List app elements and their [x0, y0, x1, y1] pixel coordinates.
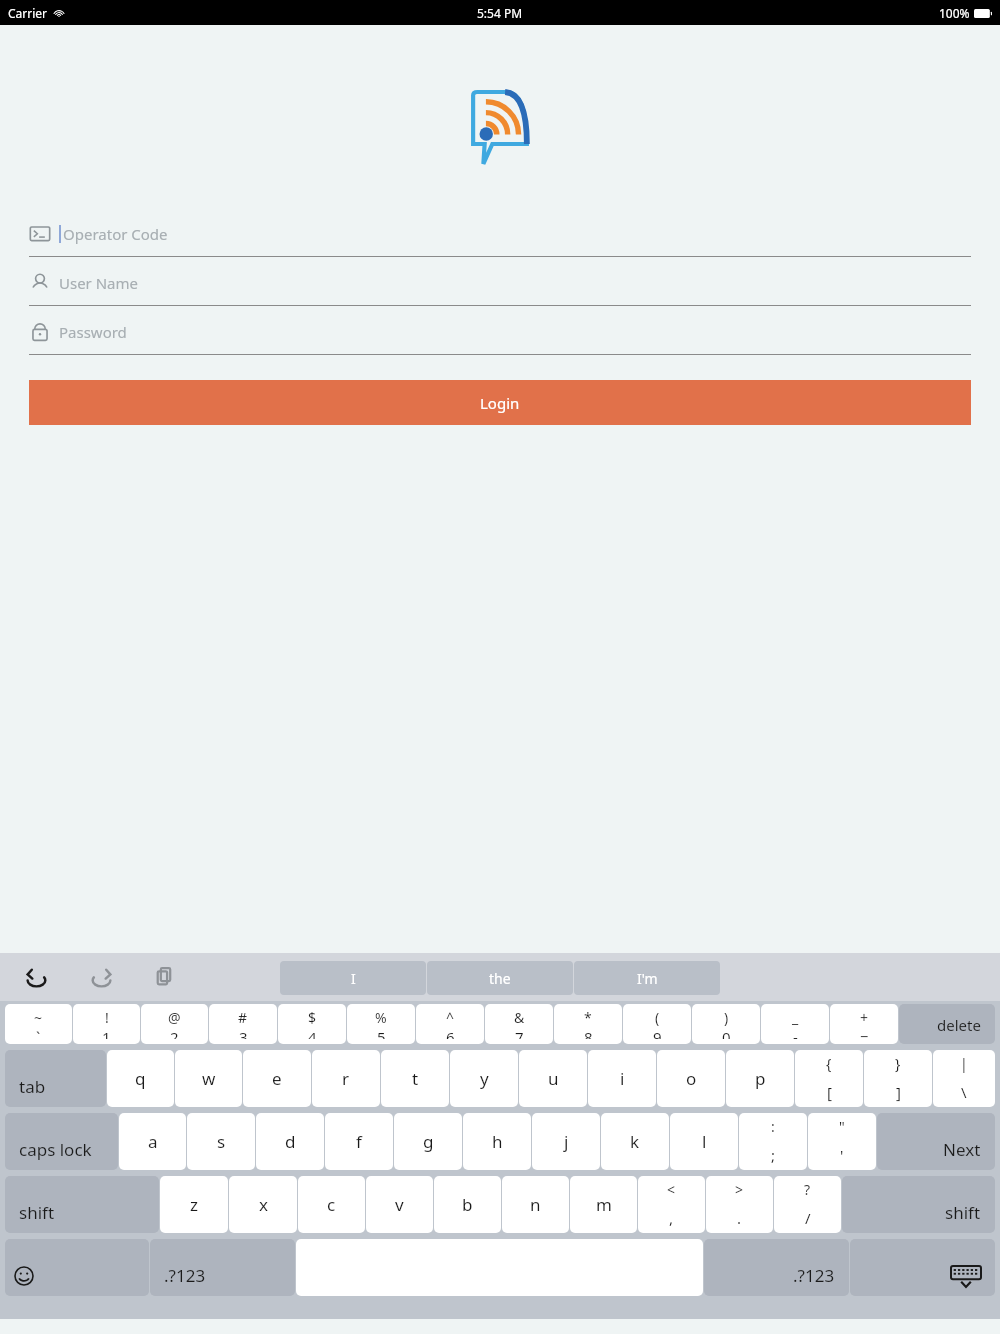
staticText: I	[351, 969, 356, 988]
button[interactable]: }	[864, 1050, 932, 1107]
button[interactable]: Operator Code	[29, 212, 971, 257]
button[interactable]: >	[706, 1176, 773, 1233]
button[interactable]: o	[657, 1050, 725, 1107]
button[interactable]: _	[761, 1004, 829, 1044]
button[interactable]: b	[434, 1176, 501, 1233]
button[interactable]: Redo	[84, 960, 118, 994]
button[interactable]: d	[256, 1113, 324, 1170]
button[interactable]: Undo	[20, 960, 54, 994]
button[interactable]: ~	[5, 1004, 72, 1044]
button[interactable]: Emoji	[5, 1239, 149, 1296]
button[interactable]: +	[830, 1004, 898, 1044]
button[interactable]: m	[570, 1176, 637, 1233]
staticText: shift	[19, 1201, 55, 1224]
button[interactable]: :	[739, 1113, 807, 1170]
button[interactable]: i	[588, 1050, 656, 1107]
button[interactable]: |	[933, 1050, 995, 1107]
staticText: g	[423, 1130, 434, 1153]
button[interactable]: &	[485, 1004, 553, 1044]
staticText: {	[826, 1054, 832, 1073]
button[interactable]: I	[280, 961, 426, 995]
button[interactable]: t	[381, 1050, 449, 1107]
button[interactable]: Next	[877, 1113, 995, 1170]
staticText: Login	[480, 393, 520, 413]
button[interactable]: %	[347, 1004, 415, 1044]
button[interactable]: *	[554, 1004, 622, 1044]
staticText: 1	[102, 1027, 111, 1039]
staticText: [	[827, 1082, 832, 1102]
button[interactable]: )	[692, 1004, 760, 1044]
button[interactable]: h	[463, 1113, 531, 1170]
staticText: 4	[308, 1027, 317, 1039]
button[interactable]: k	[601, 1113, 669, 1170]
button[interactable]: g	[394, 1113, 462, 1170]
button[interactable]: x	[229, 1176, 297, 1233]
staticText: %	[375, 1008, 387, 1027]
button[interactable]: c	[298, 1176, 365, 1233]
staticText: s	[217, 1130, 226, 1153]
button[interactable]: #	[209, 1004, 277, 1044]
button[interactable]: @	[141, 1004, 208, 1044]
button[interactable]: Password	[29, 310, 971, 355]
button[interactable]: Paste	[148, 960, 182, 994]
button[interactable]: delete	[899, 1004, 995, 1044]
button[interactable]: r	[312, 1050, 380, 1107]
button[interactable]: <	[638, 1176, 705, 1233]
button[interactable]: j	[532, 1113, 600, 1170]
button[interactable]: f	[325, 1113, 393, 1170]
staticText: )	[724, 1008, 729, 1027]
button[interactable]: v	[366, 1176, 433, 1233]
button[interactable]: !	[73, 1004, 140, 1044]
staticText: 5:54 PM	[477, 5, 523, 21]
button[interactable]: {	[795, 1050, 863, 1107]
staticText: v	[395, 1193, 404, 1216]
button[interactable]: shift	[842, 1176, 995, 1233]
staticText: e	[272, 1067, 282, 1090]
button[interactable]: z	[160, 1176, 228, 1233]
button[interactable]: tab	[5, 1050, 106, 1107]
button[interactable]: shift	[5, 1176, 159, 1233]
button[interactable]: "	[808, 1113, 876, 1170]
staticText: x	[259, 1193, 268, 1216]
button[interactable]: caps lock	[5, 1113, 118, 1170]
button[interactable]: Hide keyboard	[850, 1239, 995, 1296]
staticText: (	[655, 1008, 660, 1027]
staticText: *	[584, 1008, 592, 1027]
button[interactable]: ^	[416, 1004, 484, 1044]
staticText: y	[480, 1067, 489, 1090]
button[interactable]: ?	[774, 1176, 841, 1233]
button[interactable]: s	[187, 1113, 255, 1170]
button[interactable]: w	[175, 1050, 242, 1107]
button[interactable]: (	[623, 1004, 691, 1044]
button[interactable]: q	[107, 1050, 174, 1107]
button[interactable]: I'm	[574, 961, 720, 995]
staticText: d	[285, 1130, 296, 1153]
staticText: }	[895, 1054, 901, 1073]
button[interactable]: e	[243, 1050, 311, 1107]
button[interactable]: .?123	[704, 1239, 849, 1296]
staticText: 5	[377, 1027, 386, 1039]
button[interactable]: l	[670, 1113, 738, 1170]
button[interactable]: n	[502, 1176, 569, 1233]
staticText: tab	[19, 1075, 46, 1098]
button[interactable]: User Name	[29, 261, 971, 306]
button[interactable]: a	[119, 1113, 186, 1170]
staticText: <	[667, 1180, 676, 1199]
staticText: 6	[446, 1027, 455, 1039]
button[interactable]: y	[450, 1050, 518, 1107]
button[interactable]: u	[519, 1050, 587, 1107]
staticText: f	[356, 1130, 362, 1153]
button[interactable]: .?123	[150, 1239, 295, 1296]
staticText: !	[105, 1008, 109, 1027]
staticText: p	[755, 1067, 766, 1090]
button[interactable]: the	[427, 961, 573, 995]
staticText: '	[840, 1145, 844, 1165]
staticText: o	[686, 1067, 697, 1090]
staticText: j	[564, 1130, 569, 1153]
button[interactable]: $	[278, 1004, 346, 1044]
button[interactable]: Login	[29, 380, 971, 425]
staticText: q	[135, 1067, 146, 1090]
staticText: t	[412, 1067, 419, 1090]
button[interactable]: p	[726, 1050, 794, 1107]
